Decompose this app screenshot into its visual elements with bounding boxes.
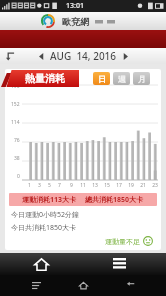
staticText: 0: [17, 173, 20, 180]
button[interactable]: Menu: [110, 255, 128, 273]
staticText: 15: [104, 182, 110, 189]
staticText: 152: [11, 101, 20, 108]
staticText: 76: [14, 137, 20, 144]
staticText: 3: [38, 182, 41, 189]
staticText: 日: [98, 74, 106, 84]
staticText: 熱量消耗: [25, 72, 65, 85]
button[interactable]: Previous day: [36, 51, 47, 62]
staticText: 190: [11, 83, 20, 90]
button[interactable]: Home: [32, 255, 50, 273]
button[interactable]: 月: [133, 72, 150, 85]
staticText: 月: [138, 74, 146, 84]
button[interactable]: Home: [72, 275, 94, 296]
staticText: 1: [28, 182, 31, 189]
staticText: 今日運動0小時52分鐘: [11, 210, 80, 220]
staticText: 今日共消耗1850大卡: [11, 223, 77, 233]
button[interactable]: 日: [93, 72, 110, 85]
button[interactable]: Back: [4, 49, 18, 63]
staticText: 5: [48, 182, 51, 189]
staticText: 17: [116, 182, 122, 189]
staticText: 歐兗網: [62, 16, 89, 27]
staticText: AUG 14, 2016: [50, 49, 117, 63]
button[interactable]: Recent apps: [25, 275, 47, 296]
staticText: 11: [80, 182, 86, 189]
staticText: 13:01: [66, 1, 84, 11]
button[interactable]: Next day: [120, 51, 131, 62]
staticText: 21: [140, 182, 146, 189]
staticText: 總共消耗1850大卡: [85, 195, 144, 205]
staticText: 9: [70, 182, 73, 189]
staticText: 運動消耗113大卡: [22, 195, 77, 205]
button[interactable]: 週: [113, 72, 130, 85]
staticText: 23: [152, 182, 158, 189]
staticText: 19: [128, 182, 134, 189]
staticText: 運動量不足: [105, 237, 140, 246]
staticText: 38: [14, 155, 20, 162]
button[interactable]: Back: [119, 275, 141, 296]
staticText: 114: [11, 119, 20, 126]
staticText: 週: [118, 74, 126, 84]
staticText: 13: [92, 182, 98, 189]
staticText: 7: [58, 182, 61, 189]
